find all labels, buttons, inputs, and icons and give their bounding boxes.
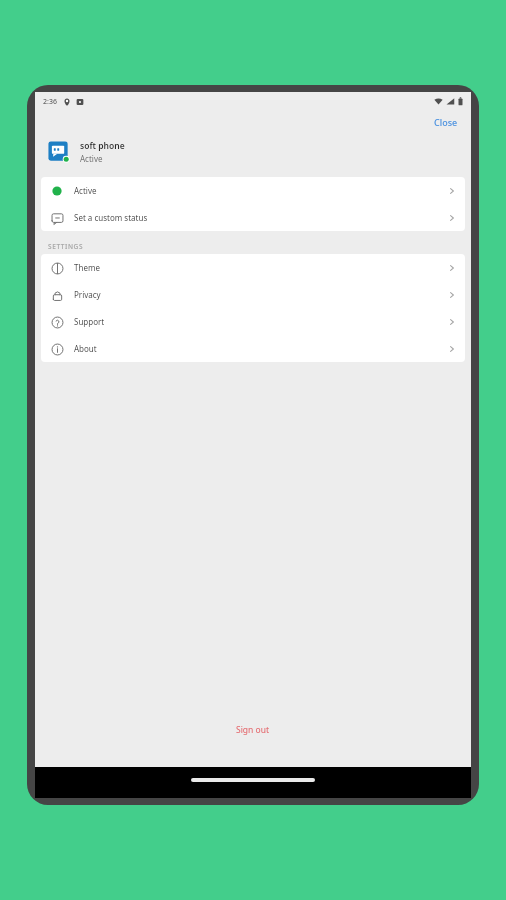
staticText: Sign out bbox=[236, 724, 270, 736]
staticText: soft phone bbox=[80, 140, 125, 152]
staticText: Close bbox=[434, 116, 458, 128]
button[interactable]: Active bbox=[41, 177, 465, 204]
staticText: Support bbox=[74, 316, 105, 327]
button[interactable]: Privacy bbox=[41, 281, 465, 308]
button[interactable]: Theme bbox=[41, 254, 465, 281]
staticText: Set a custom status bbox=[74, 212, 148, 223]
button[interactable]: Support bbox=[41, 308, 465, 335]
button[interactable]: Set a custom status bbox=[41, 204, 465, 231]
staticText: About bbox=[74, 343, 97, 354]
staticText: SETTINGS bbox=[48, 242, 84, 251]
button[interactable]: Close bbox=[421, 113, 471, 131]
staticText: Active bbox=[80, 153, 103, 164]
staticText: Active bbox=[74, 185, 97, 196]
button[interactable]: Sign out bbox=[214, 719, 292, 741]
button[interactable]: soft phone bbox=[35, 132, 471, 172]
staticText: Theme bbox=[74, 262, 100, 273]
button[interactable]: About bbox=[41, 335, 465, 362]
staticText: 2:36 bbox=[43, 97, 57, 107]
staticText: Privacy bbox=[74, 289, 101, 300]
